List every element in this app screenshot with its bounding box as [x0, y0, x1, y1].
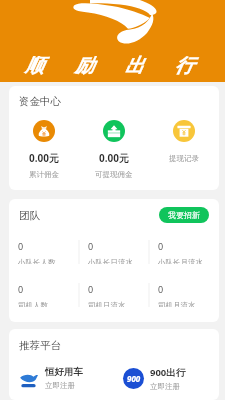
staticText: 恒好用车 — [45, 366, 83, 378]
button[interactable]: 可提现佣金 — [79, 120, 149, 179]
button[interactable]: 恒好用车 — [9, 366, 114, 390]
staticText: 我要招新 — [168, 210, 200, 220]
staticText: 小队长人数 — [18, 258, 56, 264]
staticText: 0 — [88, 240, 94, 252]
staticText: 推荐平台 — [19, 339, 61, 352]
staticText: 司机人数 — [18, 301, 48, 307]
staticText: 团队 — [19, 209, 40, 222]
staticText: 900出行 — [150, 366, 186, 379]
staticText: 0 — [158, 240, 164, 252]
staticText: 累计佣金 — [29, 170, 59, 179]
staticText: 司机月流水 — [158, 301, 196, 307]
staticText: 0 — [158, 283, 164, 295]
staticText: 可提现佣金 — [95, 170, 133, 179]
staticText: 0.00元 — [29, 151, 59, 165]
staticText: 立即注册 — [150, 382, 180, 391]
staticText: 0 — [18, 283, 24, 295]
button[interactable]: 累计佣金 — [9, 120, 79, 179]
staticText: 资金中心 — [19, 95, 61, 108]
button[interactable]: 提现记录 — [149, 120, 219, 163]
staticText: 900 — [127, 373, 141, 384]
staticText: 小队长日流水 — [88, 258, 133, 264]
button[interactable]: 我要招新 — [159, 207, 209, 223]
staticText: 0 — [88, 283, 94, 295]
staticText: 0.00元 — [99, 151, 129, 165]
staticText: 司机日流水 — [88, 301, 126, 307]
staticText: 顺励出行 — [9, 54, 209, 78]
staticText: 0 — [18, 240, 24, 252]
button[interactable]: 900 — [114, 366, 219, 391]
staticText: 小队长月流水 — [158, 258, 203, 264]
staticText: 提现记录 — [169, 154, 199, 163]
staticText: 立即注册 — [45, 381, 75, 390]
